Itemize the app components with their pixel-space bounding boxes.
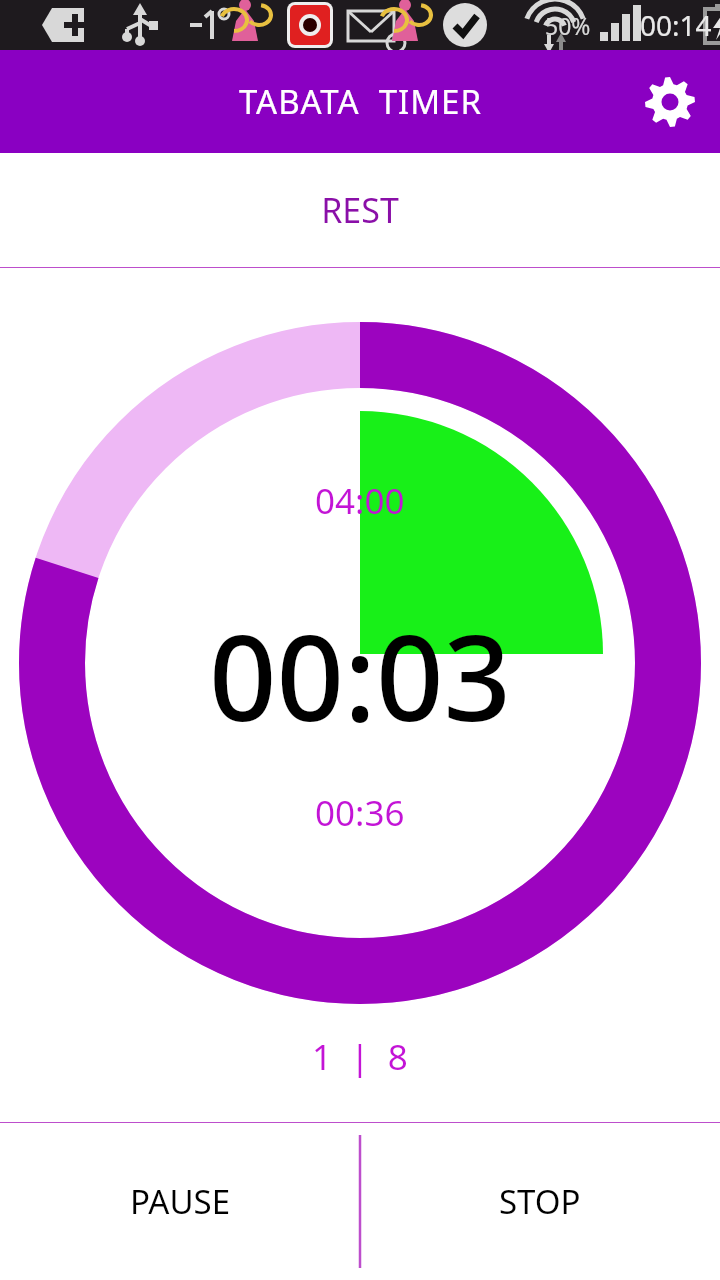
- staticText: PAUSE: [130, 1179, 230, 1224]
- staticText: 00:14: [640, 6, 712, 44]
- button[interactable]: PAUSE: [0, 1123, 360, 1280]
- button[interactable]: STOP: [360, 1123, 720, 1280]
- staticText: 1 | 8: [312, 1033, 408, 1081]
- staticText: STOP: [499, 1179, 581, 1224]
- staticText: TABATA TIMER: [239, 79, 482, 124]
- staticText: 00:03: [209, 595, 512, 756]
- staticText: REST: [321, 187, 399, 233]
- staticText: 50%: [545, 10, 591, 41]
- staticText: 04:00: [315, 477, 405, 525]
- staticText: 00:36: [315, 789, 405, 837]
- button[interactable]: Settings: [642, 74, 698, 130]
